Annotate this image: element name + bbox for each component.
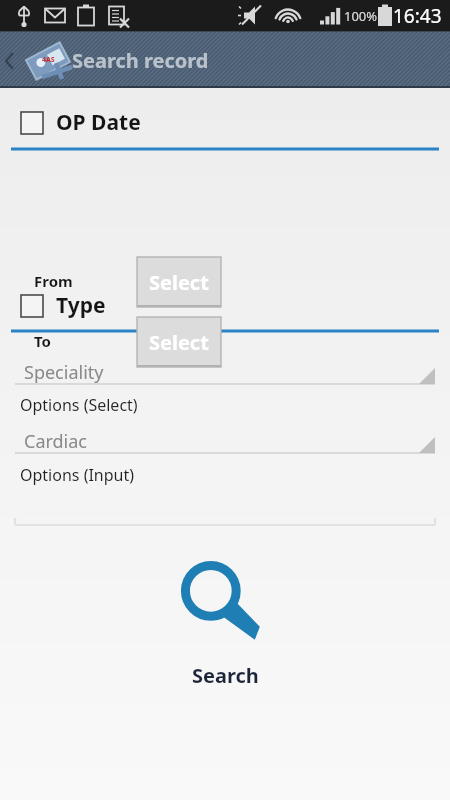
staticText: 16:43 (393, 3, 442, 29)
staticText: Select (149, 329, 209, 356)
staticText: Select (149, 269, 209, 296)
button[interactable]: Speciality (15, 356, 435, 388)
button[interactable]: Type (21, 291, 106, 320)
staticText: From (34, 271, 73, 291)
staticText: Speciality (24, 360, 104, 385)
button[interactable]: Search (0, 562, 450, 689)
staticText: Options (Input) (20, 464, 135, 486)
staticText: OP Date (56, 108, 141, 137)
button[interactable]: Select (137, 257, 221, 307)
staticText: Search record (72, 47, 209, 74)
staticText: Search (192, 662, 259, 689)
staticText: 100% (344, 7, 378, 25)
staticText: To (34, 331, 51, 351)
staticText: 4AS (42, 55, 55, 65)
button[interactable] (15, 493, 435, 527)
other: Search (182, 562, 268, 648)
staticText: Options (Select) (20, 394, 138, 416)
button[interactable]: Select (137, 317, 221, 367)
staticText: Cardiac (24, 429, 87, 454)
button[interactable]: Cardiac (15, 425, 435, 457)
button[interactable]: OP Date (21, 108, 141, 137)
staticText: Type (56, 291, 106, 320)
